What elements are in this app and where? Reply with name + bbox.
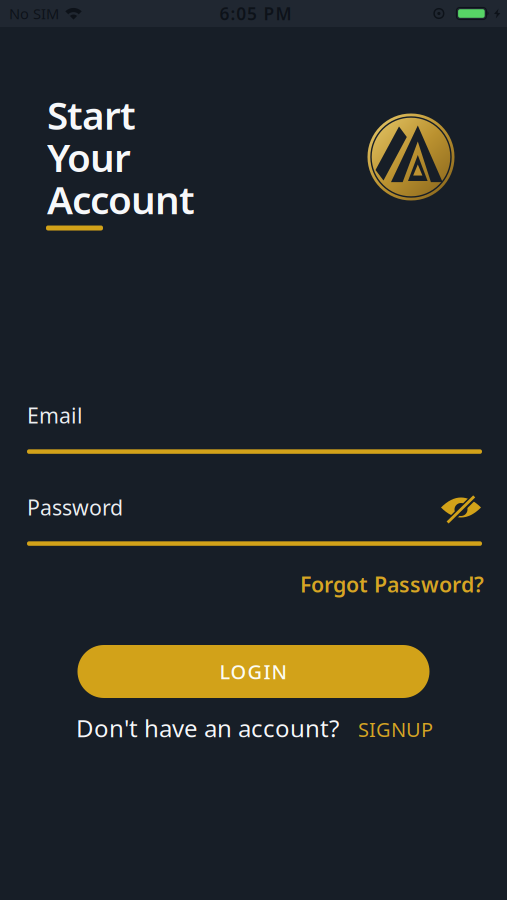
staticText: 6:05 PM <box>220 2 291 25</box>
staticText: Password <box>27 493 123 521</box>
staticText: Don't have an account? <box>76 712 339 744</box>
staticText: LOGIN <box>219 658 287 685</box>
staticText: Account <box>47 174 195 225</box>
staticText: Your <box>47 131 131 183</box>
button[interactable]: Forgot Password? <box>300 570 484 598</box>
button[interactable]: Show password <box>440 494 482 525</box>
button[interactable]: SIGNUP <box>358 716 433 743</box>
staticText: Start <box>47 89 136 140</box>
button[interactable]: Password <box>27 493 482 546</box>
staticText: No SIM <box>9 4 59 23</box>
button[interactable]: LOGIN <box>77 645 429 698</box>
staticText: Forgot Password? <box>300 570 484 598</box>
button[interactable]: Email <box>27 401 482 454</box>
staticText: SIGNUP <box>358 716 433 743</box>
staticText: Email <box>27 401 83 429</box>
